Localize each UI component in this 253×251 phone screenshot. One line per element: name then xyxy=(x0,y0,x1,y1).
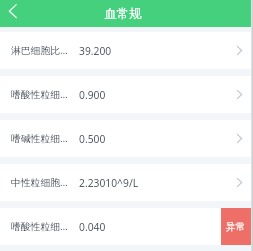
button[interactable]: 嗜酸性粒细… xyxy=(0,76,251,113)
staticText: 0.040 xyxy=(79,220,106,234)
button[interactable]: 异常 xyxy=(221,208,251,245)
staticText: 嗜酸性粒细… xyxy=(11,88,68,101)
staticText: 淋巴细胞比… xyxy=(11,44,68,57)
button[interactable]: 淋巴细胞比… xyxy=(0,32,251,69)
button[interactable]: 嗜酸性粒细… xyxy=(0,208,251,245)
button[interactable]: Back xyxy=(0,0,28,27)
staticText: 2.23010^9/L xyxy=(79,176,139,190)
staticText: 嗜碱性粒细… xyxy=(11,132,68,145)
staticText: 异常 xyxy=(226,221,246,233)
button[interactable]: 嗜碱性粒细… xyxy=(0,120,251,157)
staticText: 39.200 xyxy=(79,44,112,58)
staticText: 中性粒细胞… xyxy=(11,176,68,189)
staticText: 0.900 xyxy=(79,88,106,102)
staticText: 嗜酸性粒细… xyxy=(11,220,68,233)
staticText: 血常规 xyxy=(104,6,142,22)
button[interactable]: 中性粒细胞… xyxy=(0,164,251,201)
staticText: 0.500 xyxy=(79,132,106,146)
